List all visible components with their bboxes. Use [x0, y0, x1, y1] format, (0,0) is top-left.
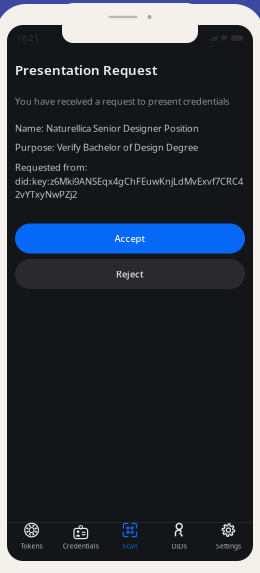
- staticText: You have received a request to present c…: [15, 95, 229, 107]
- button[interactable]: Credentials: [56, 523, 105, 561]
- staticText: Requested from:: [15, 161, 88, 173]
- staticText: Purpose: Verify Bachelor of Design Degre…: [15, 141, 198, 153]
- staticText: Tokens: [21, 542, 43, 550]
- staticText: did:key:z6Mki9ANSEqx4gChFEuwKnjLdMvExvf7…: [15, 175, 243, 187]
- button[interactable]: Settings: [204, 523, 253, 561]
- button[interactable]: Scan: [105, 523, 155, 561]
- staticText: Scan: [122, 542, 137, 550]
- staticText: Reject: [116, 268, 144, 280]
- staticText: Accept: [114, 232, 145, 245]
- staticText: Presentation Request: [15, 61, 157, 79]
- staticText: Name: Naturellica Senior Designer Positi…: [15, 122, 199, 134]
- staticText: Credentials: [63, 542, 99, 550]
- button[interactable]: Tokens: [7, 523, 56, 561]
- staticText: Settings: [216, 542, 241, 550]
- staticText: DIDs: [172, 542, 187, 550]
- staticText: 2vYTxyNwPZj2: [15, 188, 77, 200]
- button[interactable]: Reject: [15, 259, 245, 289]
- button[interactable]: Accept: [15, 223, 245, 253]
- staticText: 10:21: [17, 33, 39, 43]
- button[interactable]: DIDs: [155, 523, 204, 561]
